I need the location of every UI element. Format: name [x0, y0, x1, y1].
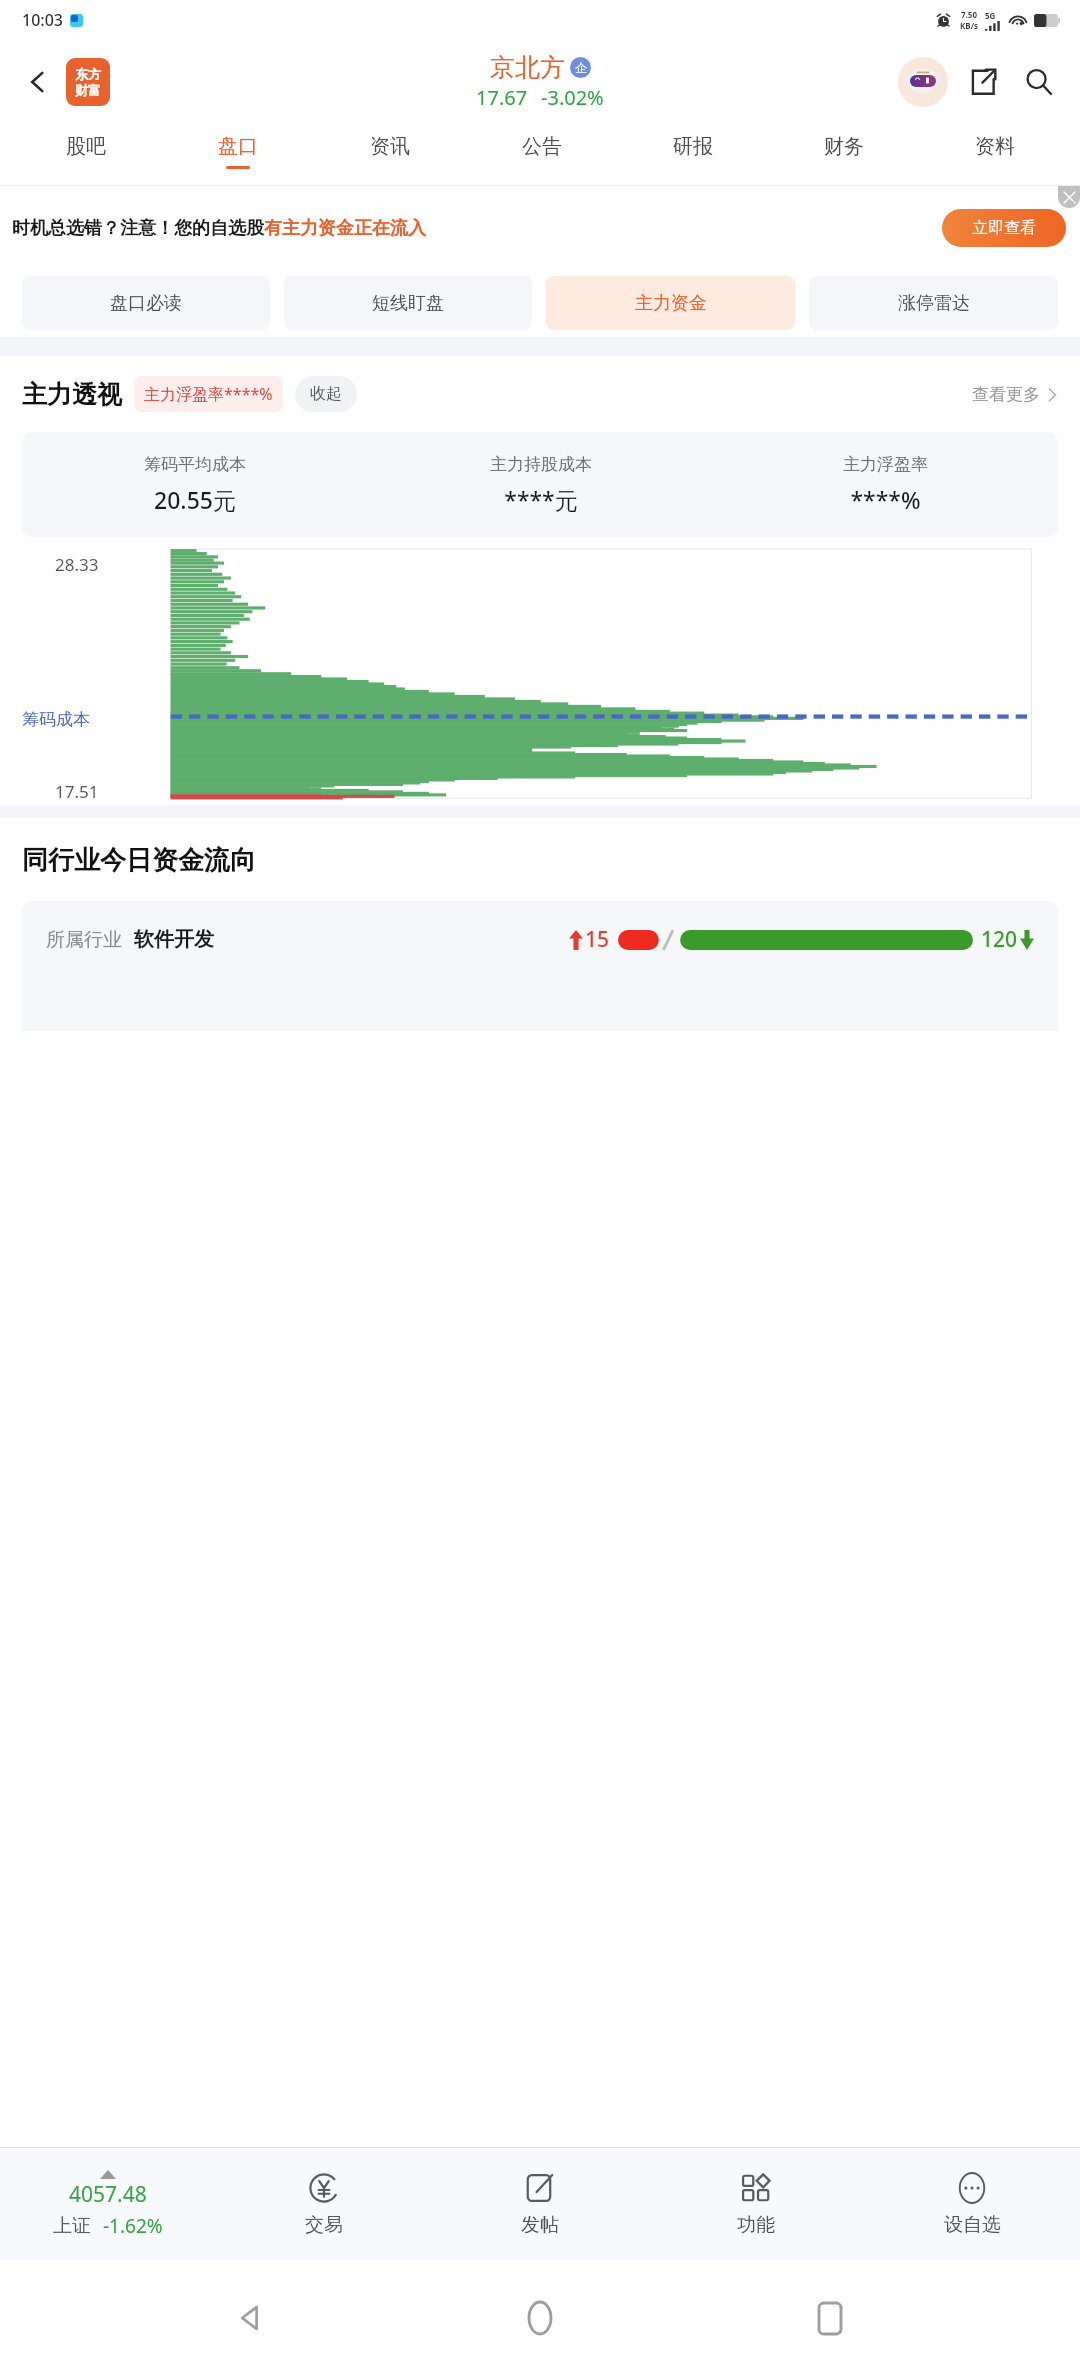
button[interactable]: 主力资金	[546, 276, 795, 330]
staticText: 28.33	[55, 553, 99, 576]
staticText: 主力资金	[635, 292, 707, 315]
button[interactable]: 交易	[216, 2148, 432, 2260]
staticText: 查看更多	[972, 384, 1040, 405]
staticText: 20.55元	[154, 484, 236, 515]
staticText: 收起	[310, 384, 342, 404]
staticText: 资料	[975, 134, 1015, 159]
staticText: 发帖	[521, 2213, 559, 2237]
button[interactable]: 资讯	[314, 124, 466, 186]
button[interactable]: 查看更多	[972, 384, 1058, 405]
button[interactable]: 收起	[295, 376, 357, 412]
staticText: 有主力资金正在流入	[264, 217, 426, 240]
staticText: 主力透视	[22, 379, 122, 410]
staticText: 企	[575, 60, 587, 75]
button[interactable]: 立即查看	[942, 209, 1066, 247]
staticText: 筹码平均成本	[144, 454, 246, 475]
button[interactable]: Home	[500, 2278, 580, 2358]
staticText: ****%	[850, 484, 921, 515]
staticText: 财富	[75, 82, 101, 98]
staticText: 10:03	[22, 9, 63, 31]
staticText: 设自选	[944, 2213, 1001, 2237]
staticText: 涨停雷达	[898, 292, 970, 315]
button[interactable]: 筹码平均成本	[22, 432, 1058, 537]
staticText: 功能	[737, 2213, 775, 2237]
button[interactable]: 财务	[768, 124, 919, 186]
staticText: 筹码成本	[22, 709, 90, 730]
button[interactable]: 4057.48	[0, 2148, 216, 2260]
button[interactable]: 股吧	[10, 124, 162, 186]
staticText: 17.51	[55, 780, 99, 803]
staticText: 短线盯盘	[372, 292, 444, 315]
staticText: 软件开发	[134, 927, 214, 952]
button[interactable]: Search	[1014, 57, 1064, 107]
staticText: 财务	[824, 134, 864, 159]
button[interactable]: 东方	[66, 58, 110, 106]
staticText: 15	[585, 925, 610, 954]
staticText: 时机总选错？注意！您的自选股	[12, 217, 264, 240]
button[interactable]: 涨停雷达	[809, 276, 1058, 330]
button[interactable]: 短线盯盘	[284, 276, 532, 330]
staticText: 17.67	[476, 84, 528, 111]
staticText: KB/s	[960, 20, 978, 31]
button[interactable]: Back	[210, 2278, 290, 2358]
button[interactable]: 主力浮盈率****%	[144, 376, 273, 412]
staticText: 资讯	[370, 134, 410, 159]
button[interactable]: 资料	[919, 124, 1070, 186]
staticText: -3.02%	[541, 84, 604, 111]
staticText: 立即查看	[972, 218, 1036, 238]
button[interactable]: AI assistant	[896, 55, 950, 109]
button[interactable]: 设自选	[864, 2148, 1080, 2260]
button[interactable]: Share	[958, 57, 1008, 107]
button[interactable]: 研报	[617, 124, 768, 186]
staticText: 东方	[75, 66, 101, 82]
staticText: 研报	[673, 134, 713, 159]
button[interactable]: 公告	[466, 124, 617, 186]
button[interactable]: 功能	[648, 2148, 864, 2260]
staticText: -1.62%	[103, 2213, 163, 2239]
staticText: 同行业今日资金流向	[22, 844, 256, 877]
staticText: 7.50	[961, 9, 977, 20]
staticText: 5G	[985, 10, 996, 21]
staticText: 主力持股成本	[490, 454, 592, 475]
staticText: 盘口	[218, 134, 258, 159]
staticText: 股吧	[66, 134, 106, 159]
staticText: 所属行业	[46, 928, 122, 952]
staticText: 交易	[305, 2213, 343, 2237]
button[interactable]: Recents	[790, 2278, 870, 2358]
button[interactable]: Back	[14, 58, 62, 106]
staticText: 120	[981, 925, 1018, 954]
staticText: 主力浮盈率****%	[144, 383, 273, 405]
button[interactable]: 发帖	[432, 2148, 648, 2260]
staticText: 京北方	[490, 52, 565, 83]
staticText: 上证	[53, 2214, 91, 2238]
staticText: 4057.48	[69, 2180, 147, 2209]
staticText: 主力浮盈率	[843, 454, 928, 475]
staticText: ****元	[504, 484, 578, 515]
button[interactable]: 所属行业	[22, 901, 1058, 1031]
button[interactable]: 盘口	[162, 124, 314, 186]
staticText: 公告	[522, 134, 562, 159]
staticText: 盘口必读	[110, 292, 182, 315]
button[interactable]: Close banner	[1058, 186, 1080, 208]
button[interactable]: 盘口必读	[22, 276, 270, 330]
